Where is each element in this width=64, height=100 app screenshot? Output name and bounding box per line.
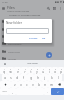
button[interactable]: Search <box>45 4 51 13</box>
button[interactable]: 4 <box>21 67 28 74</box>
button[interactable]: x <box>18 81 24 88</box>
staticText: k <box>51 76 53 80</box>
button[interactable]: g <box>27 74 34 81</box>
button[interactable] <box>6 28 49 34</box>
staticText: v <box>32 83 34 87</box>
staticText: 4 <box>25 68 26 70</box>
staticText: ?123 <box>2 90 7 93</box>
button[interactable]: Movies <box>0 55 64 62</box>
staticText: y <box>36 70 38 74</box>
staticText: , <box>12 90 13 94</box>
staticText: g <box>30 76 32 80</box>
staticText: j <box>44 76 45 80</box>
staticText: Movies <box>8 57 17 60</box>
staticText: h <box>37 76 39 80</box>
button[interactable]: Documents <box>0 40 64 47</box>
button[interactable]: 2 <box>7 67 14 74</box>
staticText: . <box>47 90 48 94</box>
staticText: Android <box>8 28 18 31</box>
button[interactable]: n <box>42 81 48 88</box>
button[interactable]: Android <box>0 26 64 33</box>
button[interactable]: 8 <box>46 67 52 74</box>
staticText: 1 <box>4 68 5 70</box>
staticText: u <box>42 70 44 74</box>
button[interactable]: h <box>34 74 41 81</box>
staticText: s <box>10 76 12 80</box>
button[interactable]: Enter <box>51 88 64 95</box>
staticText: e <box>17 70 19 74</box>
button[interactable]: v <box>30 81 36 88</box>
staticText: x <box>20 83 22 87</box>
button[interactable]: s <box>8 74 14 81</box>
button[interactable]: m <box>48 81 54 88</box>
button[interactable]: j <box>41 74 48 81</box>
button[interactable]: More options <box>57 4 63 13</box>
button[interactable]: , <box>9 88 16 95</box>
staticText: Documents <box>8 42 22 45</box>
button[interactable]: c <box>24 81 30 88</box>
button[interactable]: f <box>20 74 27 81</box>
button[interactable]: l <box>55 74 62 81</box>
staticText: d <box>16 76 18 80</box>
staticText: 2 <box>10 68 11 70</box>
button[interactable]: Switch view <box>51 4 57 13</box>
staticText: n <box>44 83 46 87</box>
button[interactable]: OK <box>41 36 47 41</box>
button[interactable]: Backspace <box>54 81 64 88</box>
staticText: b <box>38 83 40 87</box>
staticText: q <box>3 70 5 74</box>
button[interactable]: ?123 <box>0 88 9 95</box>
staticText: Internal shared storage <box>7 10 30 13</box>
staticText: o <box>54 70 56 74</box>
staticText: p <box>60 70 62 74</box>
button[interactable]: Create new folder <box>46 52 52 58</box>
staticText: 3 <box>18 68 19 70</box>
button[interactable]: Shift <box>0 81 11 88</box>
staticText: 0 <box>61 68 62 70</box>
staticText: c <box>26 83 28 87</box>
button[interactable]: DCIM <box>0 33 64 40</box>
staticText: m <box>50 83 53 87</box>
button[interactable]: a <box>2 74 8 81</box>
button[interactable]: Download <box>0 48 64 55</box>
button[interactable]: 9 <box>52 67 58 74</box>
staticText: w <box>9 70 12 74</box>
staticText: l <box>58 76 59 80</box>
button[interactable]: 1 <box>0 67 7 74</box>
button[interactable]: b <box>36 81 42 88</box>
staticText: i <box>49 70 50 74</box>
staticText: New folder <box>6 21 22 25</box>
button[interactable]: 3 <box>14 67 21 74</box>
staticText: 8 <box>49 68 50 70</box>
button[interactable]: Navigation menu <box>0 4 7 13</box>
staticText: z <box>14 83 16 87</box>
button[interactable]: z <box>11 81 18 88</box>
staticText: 5 <box>31 68 32 70</box>
staticText: 6 <box>37 68 38 70</box>
staticText: 11:20 <box>2 1 8 4</box>
staticText: INTERNAL SHARED STORAGE <box>9 14 41 17</box>
button[interactable]: 6 <box>34 67 40 74</box>
staticText: t <box>30 70 32 74</box>
button[interactable]: 7 <box>40 67 46 74</box>
button[interactable]: d <box>14 74 20 81</box>
staticText: New folder <box>27 62 38 65</box>
button[interactable]: Alarms <box>0 18 64 25</box>
staticText: Download <box>8 50 20 53</box>
button[interactable]: 0 <box>58 67 64 74</box>
staticText: f <box>23 76 24 80</box>
staticText: Alarms <box>8 20 17 23</box>
staticText: r <box>24 70 26 74</box>
button[interactable]: Voice input <box>3 62 6 65</box>
button[interactable]: 5 <box>28 67 34 74</box>
staticText: Files <box>7 5 15 10</box>
staticText: 7 <box>43 68 44 70</box>
staticText: OK <box>42 37 46 40</box>
staticText: 9 <box>55 68 56 70</box>
staticText: CANCEL <box>29 37 38 40</box>
button[interactable]: CANCEL <box>28 36 39 41</box>
button[interactable]: k <box>48 74 55 81</box>
